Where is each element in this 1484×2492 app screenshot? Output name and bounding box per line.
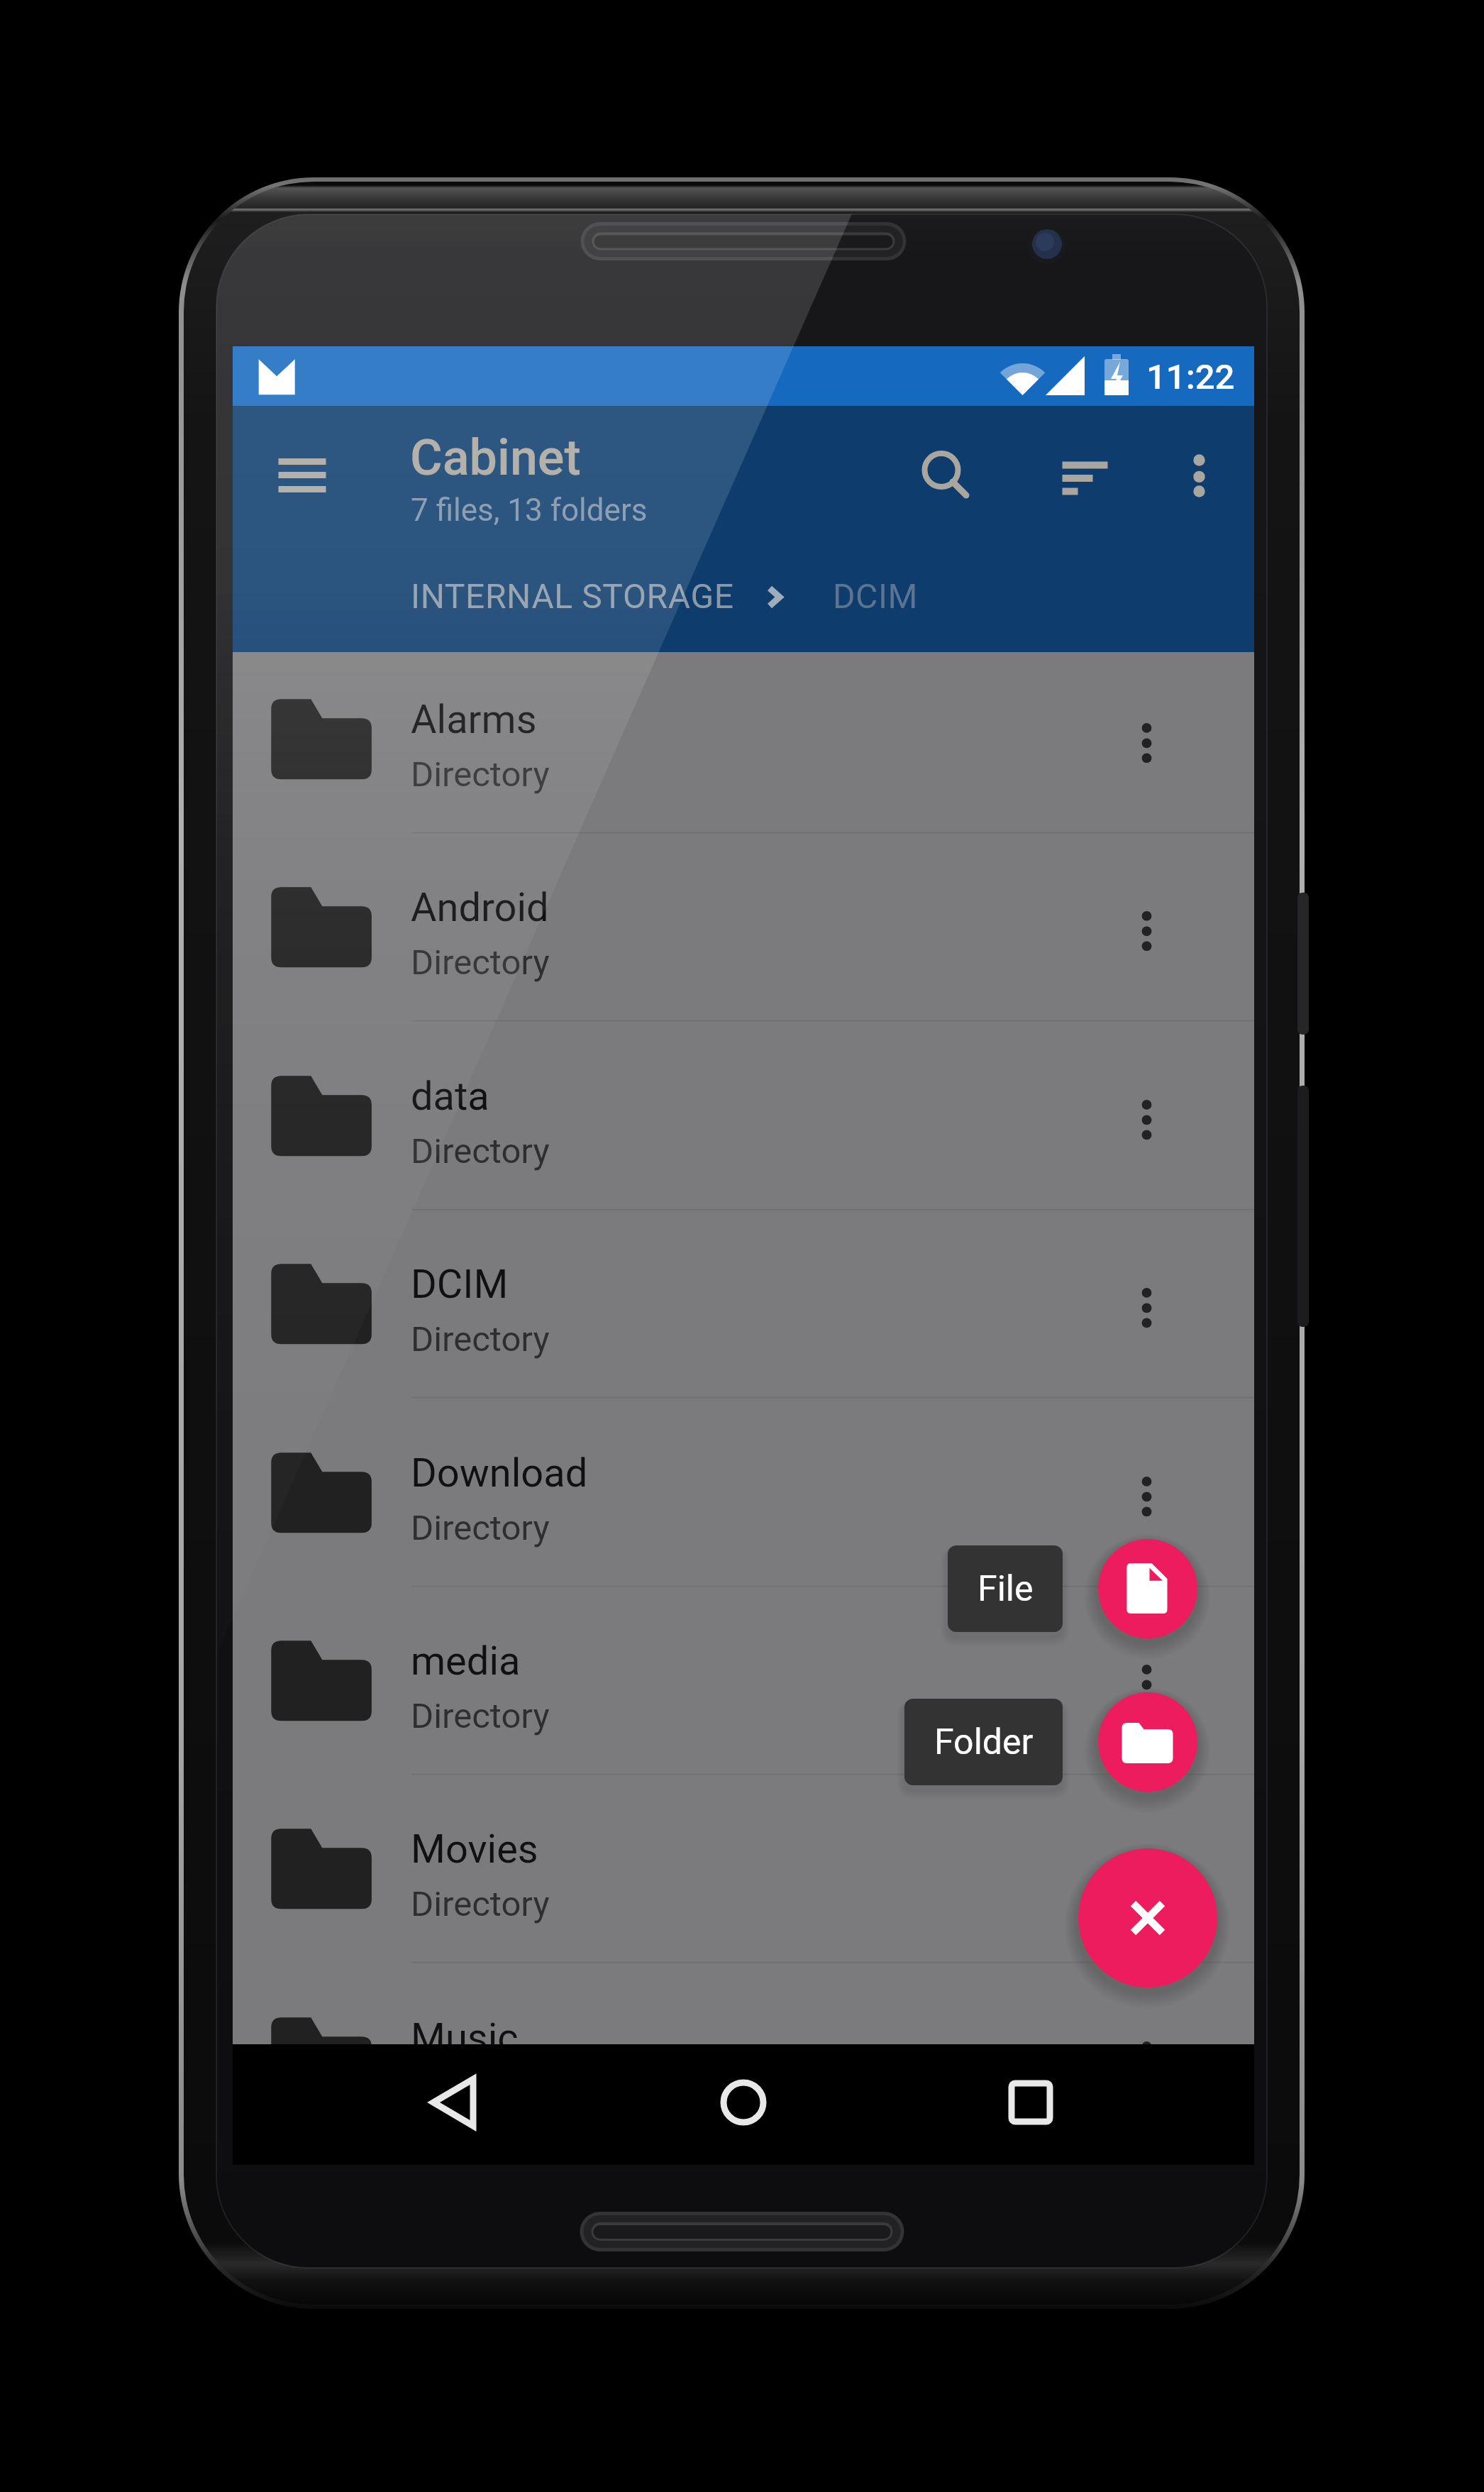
- staticText: Directory: [411, 1508, 550, 1548]
- staticText: Cabinet: [410, 429, 581, 487]
- button[interactable]: media: [233, 1587, 1254, 1775]
- button[interactable]: New folder: [1098, 1692, 1197, 1792]
- button[interactable]: Download: [233, 1399, 1254, 1587]
- staticText: Directory: [411, 2073, 550, 2113]
- button[interactable]: File: [948, 1545, 1063, 1632]
- button[interactable]: Alarms: [233, 645, 1254, 833]
- button[interactable]: Android: [233, 833, 1254, 1021]
- staticText: 11:22: [1146, 357, 1235, 397]
- staticText: data: [411, 1073, 489, 1120]
- button[interactable]: data: [233, 1022, 1254, 1210]
- button[interactable]: More options: [1149, 421, 1249, 521]
- button[interactable]: Search: [892, 421, 992, 521]
- staticText: Android: [411, 884, 549, 931]
- button[interactable]: Back: [397, 2046, 511, 2159]
- button[interactable]: Open navigation drawer: [233, 415, 354, 536]
- button[interactable]: Recents: [974, 2046, 1087, 2159]
- staticText: Movies: [411, 1826, 538, 1873]
- button[interactable]: DCIM: [233, 1210, 1254, 1398]
- button[interactable]: Folder: [904, 1699, 1063, 1785]
- button[interactable]: Sort: [1013, 421, 1113, 521]
- staticText: File: [978, 1568, 1034, 1610]
- staticText: DCIM: [411, 1261, 509, 1308]
- staticText: 7 files, 13 folders: [411, 492, 648, 529]
- staticText: Directory: [411, 1696, 550, 1736]
- button[interactable]: Home: [687, 2046, 800, 2159]
- staticText: Music: [411, 2014, 519, 2061]
- staticText: Directory: [411, 942, 550, 983]
- staticText: DCIM: [833, 576, 919, 616]
- staticText: INTERNAL STORAGE: [411, 576, 734, 616]
- staticText: Alarms: [411, 696, 537, 743]
- staticText: Directory: [411, 1884, 550, 1924]
- staticText: media: [411, 1638, 521, 1685]
- button[interactable]: Close menu: [1078, 1848, 1217, 1987]
- button[interactable]: Movies: [233, 1775, 1254, 1963]
- staticText: Folder: [934, 1721, 1034, 1763]
- staticText: Download: [411, 1450, 588, 1496]
- staticText: Directory: [411, 1319, 550, 1360]
- staticText: Directory: [411, 1131, 550, 1171]
- staticText: Directory: [411, 754, 550, 795]
- button[interactable]: Music: [233, 1963, 1254, 2151]
- button[interactable]: New file: [1098, 1539, 1197, 1638]
